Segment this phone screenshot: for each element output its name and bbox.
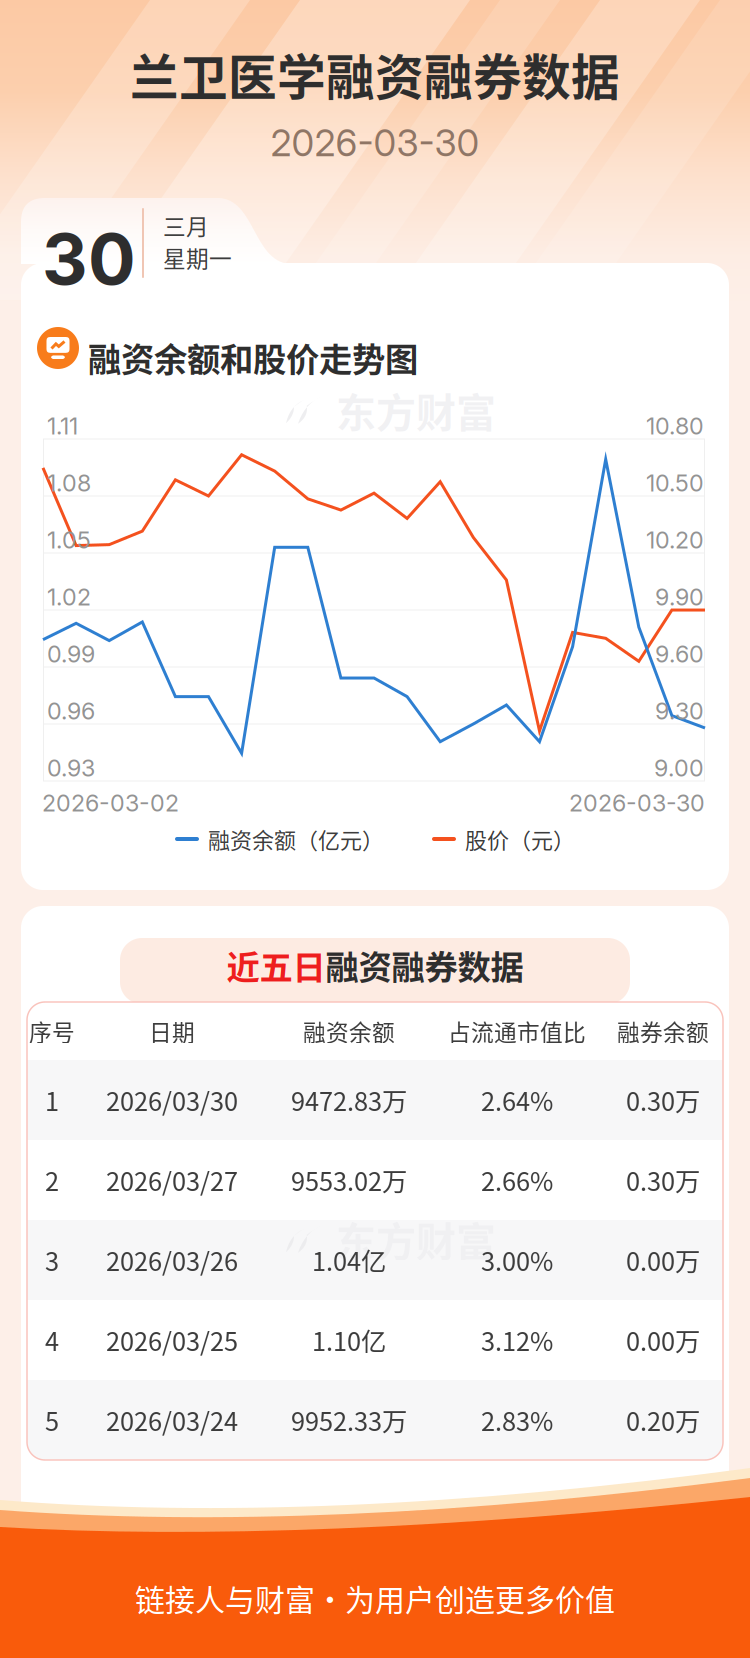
staticText: 0.00万 — [626, 1242, 700, 1278]
staticText: 三月 — [163, 209, 209, 242]
staticText: 1.04亿 — [312, 1242, 386, 1278]
staticText: 10.50 — [646, 469, 704, 497]
staticText: 5 — [45, 1402, 59, 1438]
staticText: 9553.02万 — [291, 1162, 407, 1198]
staticText: 0.20万 — [626, 1402, 700, 1438]
staticText: 0.93 — [47, 754, 95, 782]
staticText: 日期 — [149, 1015, 195, 1047]
staticText: 融资余额（亿元） — [208, 823, 384, 855]
staticText: 2026-03-30 — [270, 121, 479, 165]
staticText: 2026-03-30 — [569, 789, 705, 817]
staticText: 1.02 — [47, 583, 91, 611]
staticText: 0.30万 — [626, 1082, 700, 1118]
staticText: 1.05 — [47, 526, 91, 554]
staticText: 2 — [45, 1162, 59, 1198]
staticText: 0.99 — [47, 640, 95, 668]
staticText: 3.00% — [481, 1242, 553, 1278]
staticText: 融资融券数据 — [325, 941, 523, 989]
staticText: 2026/03/30 — [106, 1082, 238, 1118]
staticText: 2026/03/25 — [106, 1322, 238, 1358]
staticText: 2026/03/26 — [106, 1242, 238, 1278]
staticText: 3 — [45, 1242, 59, 1278]
staticText: 9.30 — [655, 697, 704, 725]
staticText: 东方财富 — [336, 1210, 496, 1268]
staticText: 9472.83万 — [291, 1082, 407, 1118]
staticText: 2.64% — [481, 1082, 553, 1118]
staticText: 9.90 — [655, 583, 704, 611]
staticText: 1.08 — [47, 469, 91, 497]
staticText: 2026-03-02 — [42, 789, 179, 817]
staticText: 9.60 — [655, 640, 704, 668]
staticText: 9952.33万 — [291, 1402, 407, 1438]
staticText: 链接人与财富·为用户创造更多价值 — [135, 1576, 615, 1620]
staticText: 3.12% — [481, 1322, 553, 1358]
staticText: 4 — [45, 1322, 59, 1358]
staticText: 序号 — [29, 1015, 75, 1047]
staticText: 9.00 — [654, 754, 704, 782]
staticText: 0.30万 — [626, 1162, 700, 1198]
staticText: 10.20 — [646, 526, 704, 554]
staticText: 星期一 — [163, 241, 232, 274]
staticText: 占流通市值比 — [448, 1015, 586, 1047]
staticText: 融券余额 — [617, 1015, 709, 1047]
staticText: 1.10亿 — [312, 1322, 386, 1358]
staticText: 2.83% — [481, 1402, 553, 1438]
staticText: 融资余额和股价走势图 — [88, 333, 418, 381]
staticText: 1 — [45, 1082, 59, 1118]
staticText: 30 — [42, 216, 136, 301]
staticText: 0.00万 — [626, 1322, 700, 1358]
staticText: 融资余额 — [303, 1015, 395, 1047]
staticText: 股价（元） — [465, 823, 575, 855]
staticText: 0.96 — [47, 697, 95, 725]
staticText: 2.66% — [481, 1162, 553, 1198]
staticText: 东方财富 — [336, 381, 496, 439]
staticText: 2026/03/27 — [106, 1162, 238, 1198]
staticText: 兰卫医学融资融券数据 — [130, 39, 620, 109]
staticText: 10.80 — [646, 412, 704, 440]
staticText: 1.11 — [47, 412, 78, 440]
staticText: 2026/03/24 — [106, 1402, 238, 1438]
staticText: 近五日 — [226, 941, 325, 989]
